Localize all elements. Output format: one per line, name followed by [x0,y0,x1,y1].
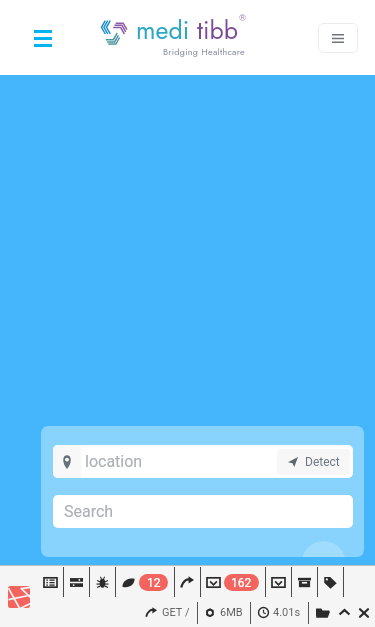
button[interactable]: Minimize [339,607,350,618]
button[interactable]: Laravel Debugbar [8,586,30,608]
button[interactable]: Views [122,566,168,598]
button[interactable]: Queries [207,566,259,598]
staticText: 12 [147,576,161,590]
button[interactable]: Session [324,566,337,598]
staticText: Detect [305,455,340,469]
staticText: GET / [162,606,190,619]
staticText: 4.01s [273,606,301,619]
button[interactable]: Request [70,566,83,598]
button[interactable]: Detect [277,449,350,475]
button[interactable]: Messages [44,566,57,598]
staticText: medi [136,12,197,48]
staticText: ® [239,13,247,24]
button[interactable]: Route [181,566,194,598]
button[interactable]: Mails [272,566,285,598]
staticText: location [85,452,143,471]
staticText: 162 [231,576,252,590]
button[interactable]: Close [359,608,369,618]
staticText: tibb [197,12,239,48]
button[interactable]: Menu [26,21,60,55]
staticText: Search [64,502,114,521]
button[interactable]: Toggle navigation [318,23,358,53]
staticText: Bridging Healthcare [163,45,245,58]
button[interactable]: Exceptions [96,566,109,598]
staticText: 6MB [220,606,243,619]
button[interactable]: Cache [298,566,311,598]
button[interactable]: Search [53,495,353,528]
button[interactable]: Open [316,606,330,620]
